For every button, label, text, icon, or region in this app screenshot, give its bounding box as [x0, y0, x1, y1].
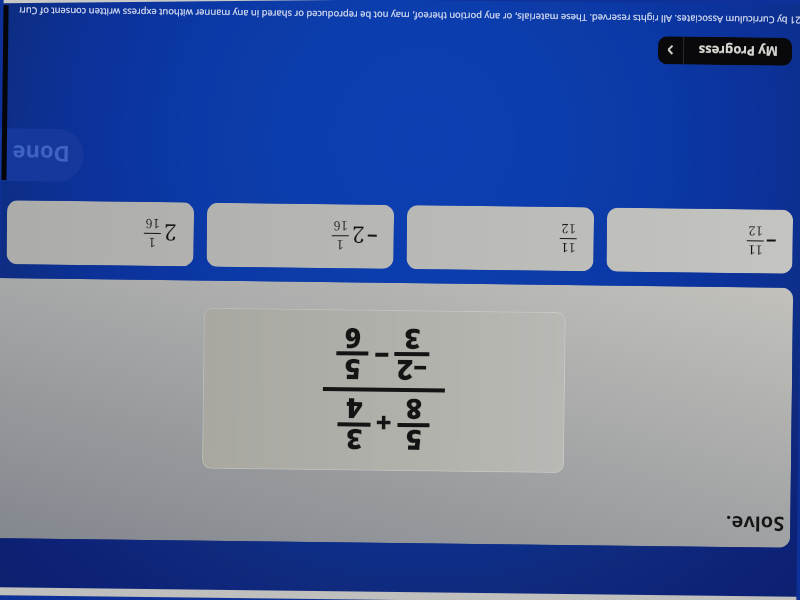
button[interactable]: 11 — [406, 205, 594, 271]
staticText: 2 — [164, 218, 177, 249]
button[interactable]: 11 — [606, 207, 793, 274]
staticText: 1 — [336, 236, 344, 254]
button[interactable]: My Progress — [658, 36, 792, 66]
staticText: 11 — [560, 239, 576, 257]
button[interactable]: 2 — [6, 200, 194, 266]
staticText: Solve. — [725, 510, 784, 538]
staticText: 12 — [561, 220, 576, 238]
staticText: 2 — [352, 220, 365, 252]
button[interactable]: 2 — [206, 203, 394, 269]
staticText: 16 — [145, 215, 160, 233]
staticText: Done — [12, 139, 70, 170]
staticText: 1 — [148, 234, 156, 252]
staticText: My Progress — [698, 42, 778, 61]
button[interactable]: Done — [0, 128, 84, 182]
staticText: 12 — [748, 222, 763, 240]
staticText: 11 — [747, 241, 763, 259]
staticText: 16 — [333, 217, 348, 235]
staticText: ©2021 by Curriculum Associates. All righ… — [19, 4, 800, 27]
